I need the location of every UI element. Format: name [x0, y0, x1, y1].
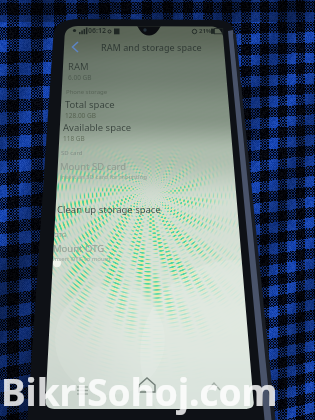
staticText: 128.00 GB: [65, 111, 96, 120]
button[interactable]: RAM: [68, 60, 218, 82]
staticText: Mount SD card: [60, 160, 127, 173]
staticText: SD card: [61, 149, 83, 157]
staticText: insert an SD card for mounting: [60, 173, 147, 181]
staticText: 21%: [199, 27, 212, 35]
staticText: 6.00 GB: [68, 73, 92, 82]
staticText: Clean up storage space: [57, 203, 161, 216]
button[interactable]: Recent apps: [72, 378, 94, 400]
staticText: Total space: [65, 98, 115, 111]
button[interactable]: Total space: [65, 98, 215, 120]
staticText: Phone storage: [66, 88, 108, 96]
staticText: insert OTG to mount: [53, 255, 111, 263]
button[interactable]: Available space: [63, 121, 213, 143]
staticText: 06:12: [88, 26, 106, 36]
staticText: Mount OTG: [53, 242, 105, 255]
staticText: OTG: [54, 231, 67, 239]
staticText: RAM: [68, 60, 89, 73]
button[interactable]: Clean up storage space: [57, 203, 227, 217]
staticText: RAM and storage space: [101, 41, 202, 53]
button[interactable]: Mount SD card: [60, 160, 210, 181]
button[interactable]: Home: [136, 374, 158, 396]
staticText: 118 GB: [63, 134, 85, 143]
button[interactable]: Mount OTG: [53, 242, 203, 263]
button[interactable]: Back: [203, 377, 225, 399]
button[interactable]: Back: [66, 38, 84, 56]
staticText: BikriSohoj.com: [1, 366, 278, 416]
staticText: Available space: [63, 121, 132, 134]
